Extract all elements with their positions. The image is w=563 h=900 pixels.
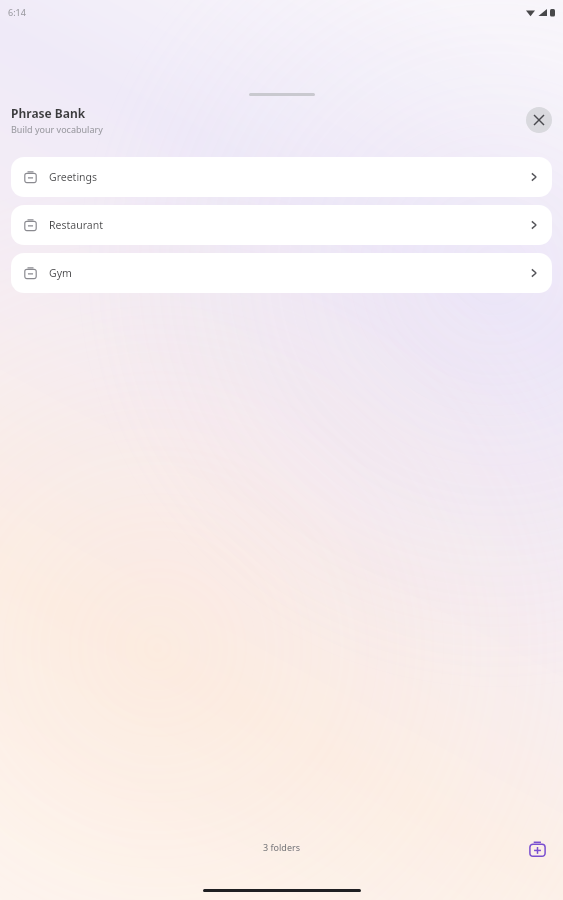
button[interactable]: Greetings	[11, 157, 552, 197]
staticText: Build your vocabulary	[11, 123, 103, 135]
staticText: Gym	[49, 266, 528, 280]
button[interactable]: Add folder	[523, 835, 551, 863]
staticText: 6:14	[8, 6, 26, 18]
staticText: 3 folders	[263, 841, 300, 853]
button[interactable]: Close	[526, 107, 552, 133]
staticText: Greetings	[49, 170, 528, 184]
staticText: Phrase Bank	[11, 105, 86, 121]
staticText: Restaurant	[49, 218, 528, 232]
button[interactable]: Gym	[11, 253, 552, 293]
button[interactable]: Restaurant	[11, 205, 552, 245]
